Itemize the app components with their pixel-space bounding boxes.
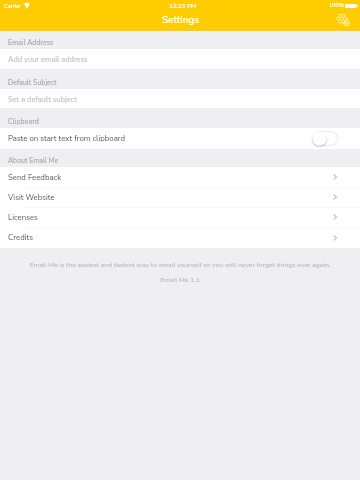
staticText: Email Address: [8, 38, 54, 48]
staticText: Send Feedback: [8, 172, 333, 183]
button[interactable]: Paste on start text from clipboard: [0, 128, 360, 149]
staticText: Email Me is the easiest and fastest way …: [14, 260, 346, 269]
staticText: Visit Website: [8, 192, 333, 203]
staticText: Licenses: [8, 212, 333, 223]
staticText: Settings: [162, 13, 199, 26]
staticText: About Email Me: [8, 156, 59, 166]
staticText: 12:23 PM: [169, 2, 197, 10]
staticText: 100%: [329, 2, 344, 9]
staticText: Add your email address: [8, 54, 88, 64]
staticText: Email Me 1.1: [0, 275, 360, 284]
button[interactable]: Add your email address: [0, 49, 360, 69]
staticText: Paste on start text from clipboard: [8, 133, 312, 144]
staticText: Carrier: [4, 2, 21, 10]
button[interactable]: Visit Website: [0, 187, 360, 207]
button[interactable]: Send Feedback: [0, 167, 360, 187]
button[interactable]: Settings: [336, 13, 350, 27]
button[interactable]: Licenses: [0, 207, 360, 227]
button[interactable]: Credits: [0, 227, 360, 248]
staticText: Credits: [8, 232, 333, 243]
staticText: Default Subject: [8, 78, 57, 88]
staticText: Clipboard: [8, 117, 39, 127]
staticText: Set a default subject: [8, 94, 77, 104]
button[interactable]: Set a default subject: [0, 89, 360, 108]
